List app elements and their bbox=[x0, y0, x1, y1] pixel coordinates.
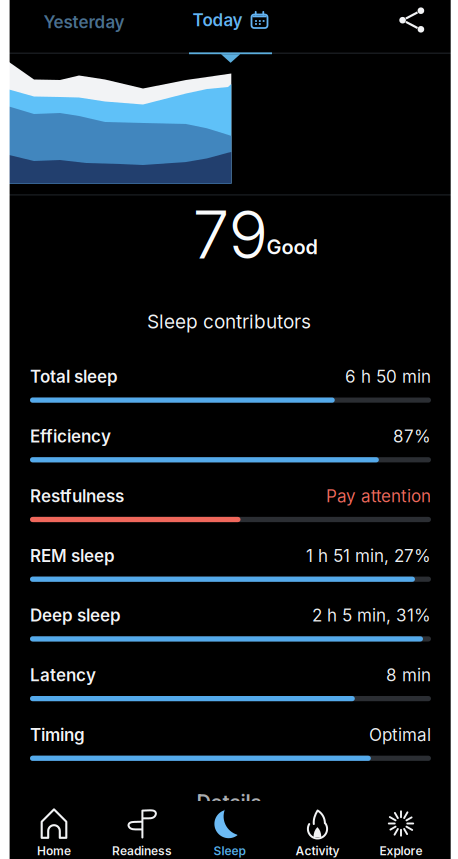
staticText: Good bbox=[266, 235, 317, 259]
staticText: Activity bbox=[295, 844, 339, 858]
staticText: Explore bbox=[379, 844, 422, 858]
staticText: Pay attention bbox=[326, 486, 431, 506]
button[interactable]: Explore bbox=[357, 801, 444, 859]
staticText: 79 bbox=[192, 195, 268, 274]
button[interactable]: Today bbox=[192, 10, 268, 30]
staticText: Home bbox=[37, 844, 71, 858]
staticText: Sleep contributors bbox=[147, 310, 311, 333]
staticText: REM sleep bbox=[30, 545, 115, 566]
staticText: 2 h 5 min, 31% bbox=[312, 605, 431, 626]
button[interactable]: Latency bbox=[30, 663, 431, 703]
button[interactable]: Home bbox=[10, 801, 97, 859]
button[interactable]: REM sleep bbox=[30, 544, 431, 584]
staticText: Details bbox=[196, 790, 261, 814]
button[interactable]: Yesterday bbox=[43, 12, 124, 32]
staticText: 6 h 50 min bbox=[345, 366, 431, 387]
button[interactable]: Efficiency bbox=[30, 424, 431, 464]
staticText: Restfulness bbox=[30, 486, 124, 506]
staticText: Timing bbox=[30, 724, 85, 745]
button[interactable]: Readiness bbox=[98, 801, 185, 859]
staticText: 1 h 51 min, 27% bbox=[306, 545, 431, 566]
button[interactable]: Total sleep bbox=[30, 364, 431, 404]
staticText: Today bbox=[192, 10, 242, 30]
staticText: Efficiency bbox=[30, 426, 111, 447]
button[interactable]: Timing bbox=[30, 723, 431, 763]
button[interactable]: Activity bbox=[274, 801, 361, 859]
staticText: Yesterday bbox=[43, 12, 124, 32]
staticText: Total sleep bbox=[30, 366, 118, 387]
button[interactable]: Restfulness bbox=[30, 484, 431, 524]
staticText: Readiness bbox=[112, 844, 172, 858]
button[interactable]: Sleep bbox=[186, 801, 273, 859]
staticText: 8 min bbox=[386, 665, 431, 685]
staticText: Latency bbox=[30, 665, 96, 685]
staticText: Sleep bbox=[213, 844, 245, 858]
staticText: Optimal bbox=[369, 724, 431, 745]
button[interactable]: Deep sleep bbox=[30, 603, 431, 643]
button[interactable]: Share bbox=[398, 7, 424, 33]
staticText: Deep sleep bbox=[30, 605, 121, 626]
staticText: 87% bbox=[393, 426, 431, 447]
